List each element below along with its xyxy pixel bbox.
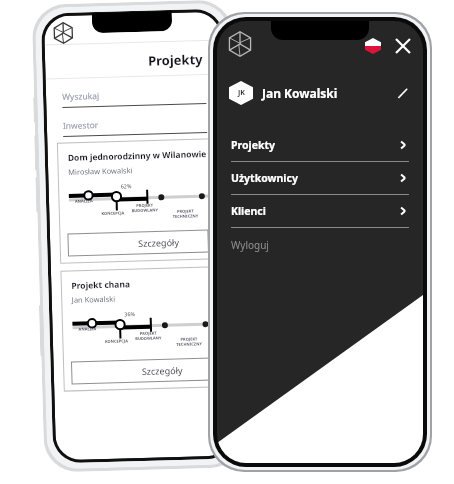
staticText: PROJEKT TECHNICZNY [172,208,199,219]
staticText: Wyloguj [231,238,269,252]
staticText: Wyszukaj [62,90,100,103]
staticText: Projekty [148,50,203,70]
staticText: Użytkownicy [231,171,298,185]
button[interactable]: Projekt chana [61,267,220,391]
button[interactable]: Dom jednorodzinny w Wilanowie [57,139,217,263]
button[interactable]: Użytkownicy [217,162,423,194]
staticText: Projekty [231,138,276,152]
staticText: Szczegóły [142,364,183,377]
staticText: Jan Kowalski [72,294,116,305]
staticText: Jan Kowalski [262,85,338,101]
button[interactable]: JK [217,75,423,111]
staticText: PROJEKT TECHNICZNY [176,336,202,347]
button[interactable]: Edytuj profil [395,85,411,101]
staticText: KONCEPCJA [101,210,124,216]
button[interactable]: Projekty [217,129,423,161]
staticText: ANALIZA [75,198,93,204]
staticText: 36% [124,310,135,317]
button[interactable]: Klienci [217,195,423,227]
staticText: Inwestor [63,119,99,132]
staticText: KONCEPCJA [105,338,128,344]
staticText: ANALIZA [78,326,97,332]
button[interactable]: Wyloguj [217,228,423,262]
staticText: 62% [120,182,132,189]
staticText: PROJEKT BUDOWLANY [135,330,162,341]
button[interactable]: Szczegóły [68,230,208,256]
staticText: Klienci [231,204,266,218]
staticText: Szczegóły [138,236,179,249]
button[interactable]: Wyszukaj [46,75,222,108]
staticText: PROJEKT BUDOWLANY [131,202,158,213]
staticText: Mirosław Kowalski [68,165,133,177]
button[interactable]: Zamknij [393,36,413,56]
staticText: Dom jednorodzinny w Wilanowie [68,148,207,164]
button[interactable]: Szczegóły [71,358,212,384]
button[interactable]: Jezyk polski [365,38,381,54]
button[interactable]: Inwestor [46,104,223,137]
staticText: JK [238,88,245,98]
button[interactable]: Logo [227,31,253,57]
staticText: Projekt chana [71,278,130,292]
